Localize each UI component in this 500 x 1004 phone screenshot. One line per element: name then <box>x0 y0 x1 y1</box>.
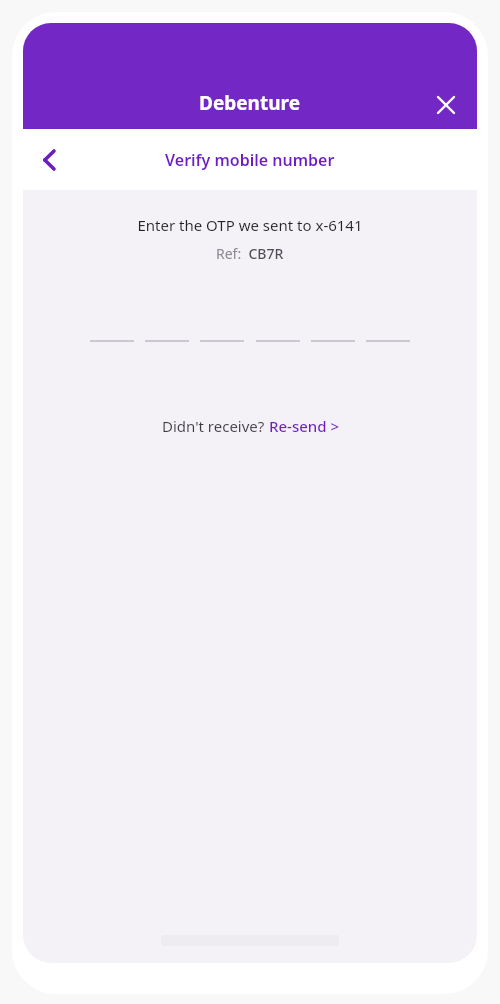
button[interactable]: OTP digit field <box>90 320 134 342</box>
button[interactable]: Close <box>425 84 467 126</box>
staticText: Re-send > <box>269 416 339 436</box>
button[interactable]: Didn't receive? <box>156 412 345 440</box>
button[interactable]: OTP digit field <box>200 320 244 342</box>
staticText: Debenture <box>199 90 301 116</box>
staticText: Verify mobile number <box>165 149 335 171</box>
button[interactable]: Back <box>27 138 71 182</box>
button[interactable]: OTP digit field <box>311 320 355 342</box>
button[interactable]: OTP digit field <box>256 320 300 342</box>
staticText: Ref: CB7R <box>216 244 284 263</box>
staticText: Enter the OTP we sent to x-6141 <box>137 215 363 235</box>
button[interactable]: OTP digit field <box>145 320 189 342</box>
button[interactable]: OTP digit field <box>366 320 410 342</box>
staticText: Didn't receive? <box>162 416 269 436</box>
